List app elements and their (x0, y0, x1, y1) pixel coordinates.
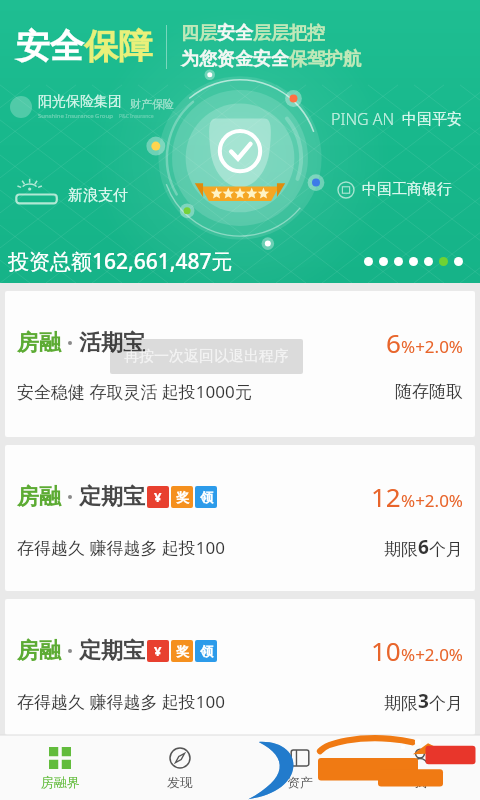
staticText: 我 (414, 774, 427, 790)
staticText: 保障 (84, 25, 152, 68)
staticText: 随存随取 (395, 381, 463, 402)
staticText: 定期宝 (79, 637, 145, 665)
staticText: 奖 (176, 489, 189, 505)
staticText: %+2.0% (401, 643, 463, 666)
staticText: 房融 (17, 637, 61, 665)
staticText: 四层 (181, 22, 217, 45)
staticText: 个月 (429, 539, 463, 560)
button[interactable]: 房融 (5, 445, 475, 591)
staticText: 房融界 (41, 774, 80, 790)
staticText: 为您资金安全 (181, 48, 289, 71)
staticText: 期限 (384, 539, 418, 560)
staticText: 12 (371, 479, 401, 514)
staticText: %+2.0% (401, 489, 463, 512)
staticText: 保驾护航 (289, 48, 361, 71)
staticText: 3 (418, 688, 429, 714)
staticText: 存得越久 赚得越多 起投100 (17, 536, 226, 559)
button[interactable]: 资产 (240, 735, 360, 800)
staticText: 发现 (167, 774, 193, 790)
staticText: 6 (386, 325, 401, 360)
button[interactable]: 房融 (5, 291, 475, 437)
staticText: 层层把控 (253, 22, 325, 45)
staticText: 投资总额162,661,487元 (8, 247, 233, 276)
staticText: 安全稳健 存取灵活 起投1000元 (17, 380, 252, 403)
button[interactable]: 房融 (5, 599, 475, 735)
staticText: 阳光保险集团 (38, 93, 122, 111)
staticText: 房融 (17, 483, 61, 511)
button[interactable]: 发现 (120, 735, 240, 800)
staticText: 财产保险 (130, 97, 174, 111)
staticText: 10 (371, 633, 401, 668)
staticText: 领 (200, 489, 213, 505)
staticText: 房融 (17, 329, 61, 357)
staticText: 中国工商银行 (362, 180, 452, 199)
staticText: 定期宝 (79, 483, 145, 511)
staticText: 期限 (384, 693, 418, 714)
staticText: 新浪支付 (68, 186, 128, 205)
staticText: P&C Insurance (119, 113, 154, 120)
button[interactable]: 安全 (0, 0, 480, 283)
button[interactable]: 我 (360, 735, 480, 800)
staticText: 6 (418, 534, 429, 560)
staticText: 中国平安 (402, 110, 462, 129)
staticText: 资产 (287, 774, 313, 790)
staticText: 奖 (176, 643, 189, 659)
staticText: 领 (200, 643, 213, 659)
staticText: ¥ (154, 488, 162, 506)
staticText: 个月 (429, 693, 463, 714)
staticText: 安全 (217, 22, 253, 45)
staticText: Sunshine Insurance Group (38, 112, 113, 120)
staticText: 再按一次返回以退出程序 (124, 347, 289, 366)
staticText: 安全 (16, 25, 84, 68)
staticText: 活期宝 (79, 329, 145, 357)
staticText: %+2.0% (401, 335, 463, 358)
staticText: 存得越久 赚得越多 起投100 (17, 690, 226, 713)
staticText: ¥ (154, 642, 162, 660)
button[interactable]: 房融界 (0, 735, 120, 800)
staticText: PING AN (331, 108, 395, 130)
